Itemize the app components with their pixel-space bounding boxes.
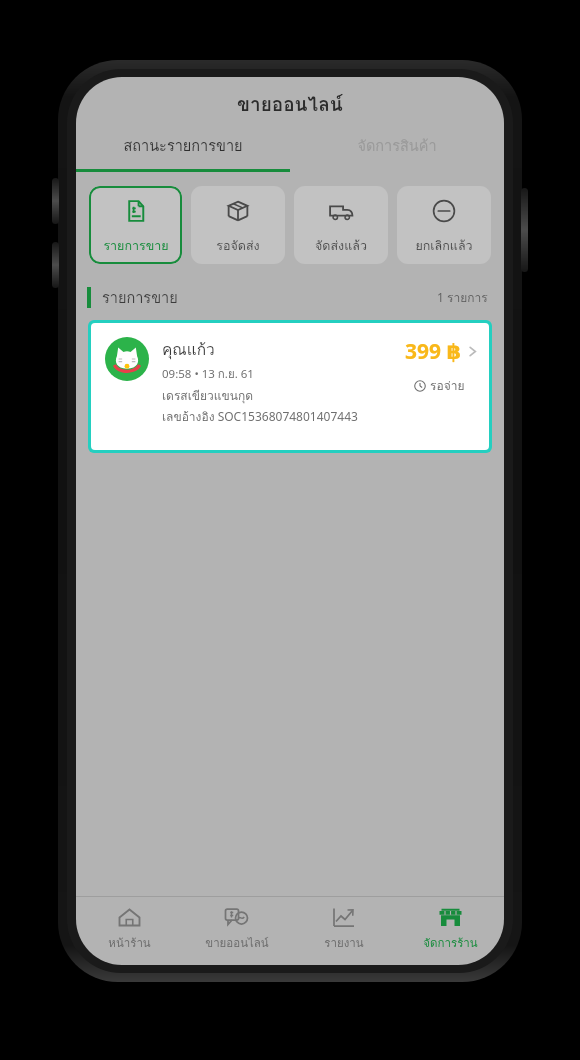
staticText: รายการขาย: [102, 286, 178, 309]
button[interactable]: สถานะรายการขาย: [76, 121, 290, 169]
button[interactable]: จัดส่งแล้ว: [294, 186, 388, 264]
button[interactable]: รอจัดส่ง: [191, 186, 285, 264]
button[interactable]: จัดการร้าน: [397, 897, 504, 959]
staticText: 1 รายการ: [437, 288, 488, 307]
button[interactable]: คุณแก้ว: [88, 320, 492, 453]
button[interactable]: รายงาน: [290, 897, 397, 959]
button[interactable]: จัดการสินค้า: [290, 121, 504, 169]
staticText: 09:58 • 13 ก.ย. 61: [162, 365, 254, 383]
staticText: จัดการร้าน: [423, 934, 478, 952]
button[interactable]: รายการขาย: [89, 186, 182, 264]
button[interactable]: ยกเลิกแล้ว: [397, 186, 491, 264]
staticText: เลขอ้างอิง SOC15368074801407443: [162, 407, 358, 426]
staticText: รายงาน: [324, 934, 364, 952]
staticText: สถานะรายการขาย: [123, 134, 243, 157]
staticText: รอจ่าย: [430, 376, 465, 395]
staticText: คุณแก้ว: [162, 337, 215, 362]
staticText: จัดการสินค้า: [357, 134, 437, 157]
button[interactable]: ขายออนไลน์: [183, 897, 290, 959]
staticText: รายการขาย: [103, 236, 169, 256]
staticText: หน้าร้าน: [108, 934, 151, 952]
staticText: ขายออนไลน์: [237, 89, 343, 119]
staticText: 399 ฿: [405, 337, 462, 366]
staticText: รอจัดส่ง: [216, 236, 260, 256]
staticText: ยกเลิกแล้ว: [415, 236, 473, 256]
staticText: เดรสเขียวแขนกุด: [162, 386, 253, 405]
staticText: ขายออนไลน์: [205, 934, 269, 952]
button[interactable]: หน้าร้าน: [76, 897, 183, 959]
staticText: จัดส่งแล้ว: [315, 236, 367, 256]
